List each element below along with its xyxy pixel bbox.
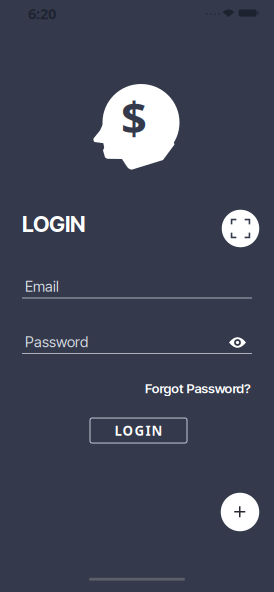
button[interactable]: Email	[22, 277, 252, 298]
staticText: LOGIN	[114, 422, 162, 439]
button[interactable]	[225, 330, 249, 354]
button[interactable]	[222, 210, 259, 247]
button[interactable]	[221, 493, 259, 531]
staticText: LOGIN	[22, 211, 85, 237]
button[interactable]: LOGIN	[90, 418, 187, 443]
button[interactable]: Password	[22, 333, 252, 354]
staticText: Forgot Password?	[145, 380, 251, 396]
button[interactable]: Forgot Password?	[71, 380, 251, 396]
staticText: Email	[25, 277, 59, 295]
staticText: $	[121, 87, 147, 147]
staticText: 6:20	[28, 4, 56, 23]
staticText: Password	[25, 333, 88, 351]
